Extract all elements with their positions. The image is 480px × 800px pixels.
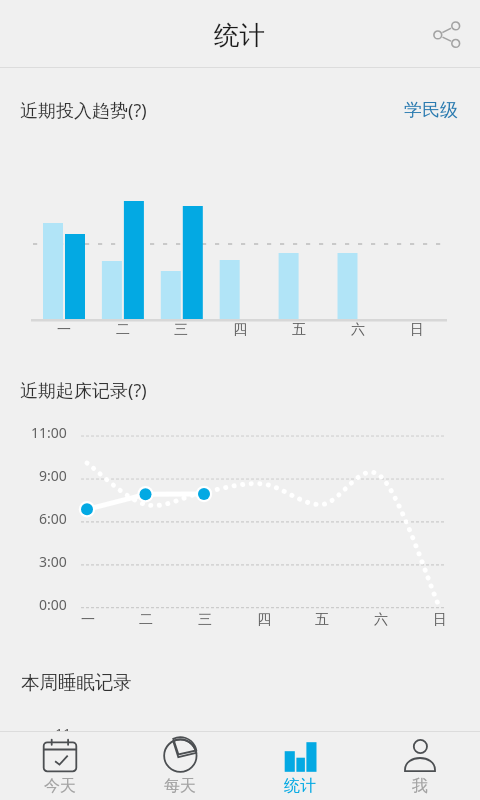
staticText: 11:00 [31, 423, 67, 442]
staticText: 一 [81, 611, 95, 629]
staticText: 每天 [164, 776, 196, 796]
button[interactable]: 近期投入趋势(?) [0, 88, 480, 133]
button[interactable]: 我 [360, 732, 480, 800]
staticText: 一 [57, 321, 71, 339]
staticText: 日 [433, 611, 447, 629]
button[interactable]: 近期起床记录(?) [0, 368, 480, 413]
button[interactable]: 统计 [240, 732, 360, 800]
staticText: 0:00 [39, 595, 67, 614]
staticText: 统计 [214, 19, 266, 51]
staticText: 三 [174, 321, 188, 339]
staticText: 我 [412, 776, 428, 796]
staticText: 三 [198, 611, 212, 629]
staticText: 二 [139, 611, 153, 629]
staticText: 四 [233, 321, 247, 339]
staticText: 四 [257, 611, 271, 629]
button[interactable]: 每天 [120, 732, 240, 800]
button[interactable]: 本周睡眠记录 [0, 660, 480, 705]
staticText: 近期投入趋势(?) [20, 98, 147, 123]
staticText: 11 [55, 724, 72, 743]
button[interactable]: 学民级 [370, 88, 480, 133]
staticText: 六 [374, 611, 388, 629]
button[interactable]: 今天 [0, 732, 120, 800]
staticText: 3:00 [39, 552, 67, 571]
staticText: 日 [410, 321, 424, 339]
staticText: 五 [292, 321, 306, 339]
staticText: 今天 [44, 776, 76, 796]
staticText: 学民级 [404, 99, 458, 122]
staticText: 本周睡眠记录 [21, 671, 132, 694]
staticText: 9:00 [39, 466, 67, 485]
staticText: 6:00 [39, 509, 67, 528]
button[interactable]: Share [422, 10, 470, 58]
staticText: 近期起床记录(?) [20, 378, 147, 403]
staticText: 五 [315, 611, 329, 629]
staticText: 统计 [284, 776, 316, 796]
staticText: 二 [116, 321, 130, 339]
staticText: 六 [351, 321, 365, 339]
